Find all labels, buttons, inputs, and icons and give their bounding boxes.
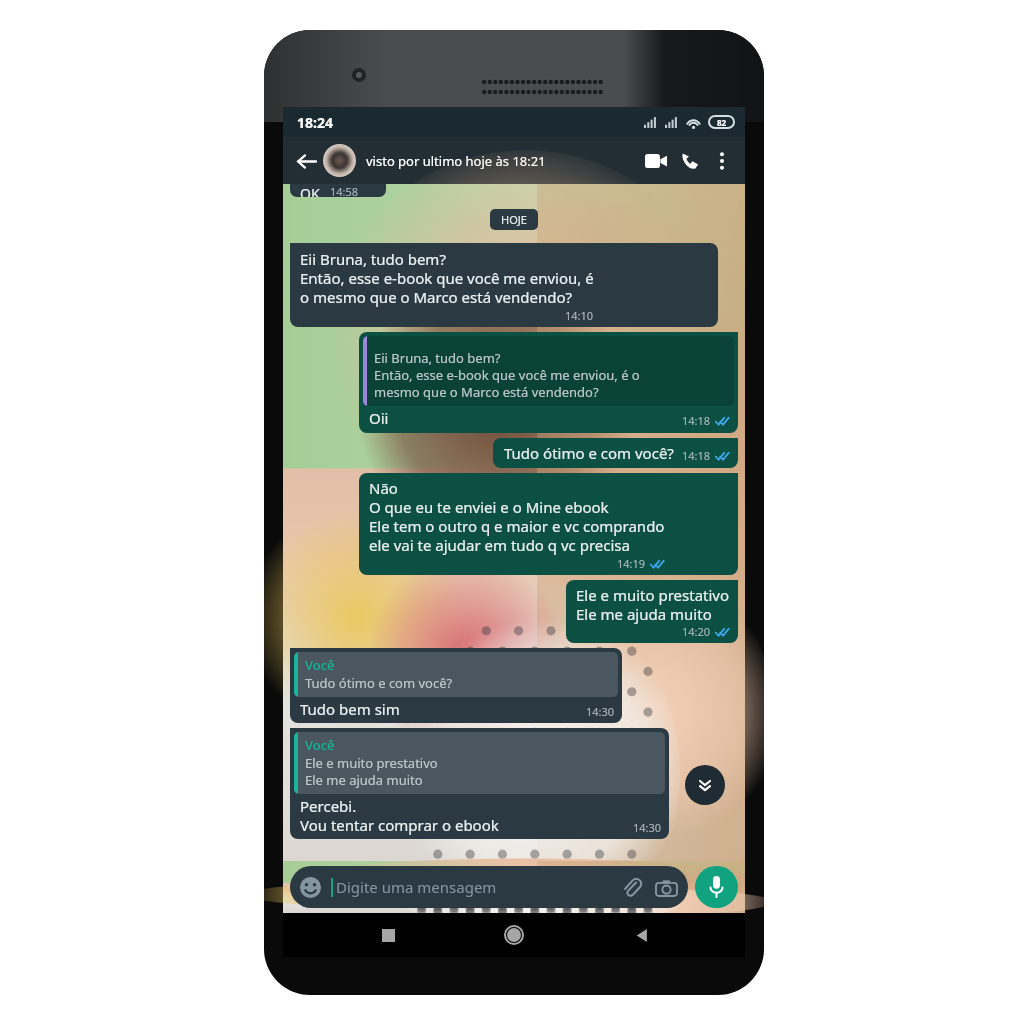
staticText: 14:19	[617, 556, 646, 571]
staticText: 14:18	[682, 413, 711, 428]
staticText: visto por ultimo hoje às 18:21	[366, 152, 639, 170]
button[interactable]: Record voice message	[695, 866, 738, 908]
staticText: HOJE	[501, 212, 527, 227]
button[interactable]: Você	[290, 728, 669, 839]
staticText: 82	[717, 117, 727, 127]
staticText: OK	[300, 184, 320, 197]
staticText: Tudo bem sim	[300, 699, 400, 719]
staticText: 14:58	[330, 184, 359, 197]
staticText: Tudo ótimo e com você?	[305, 674, 453, 692]
staticText: Digite uma mensagem	[336, 877, 620, 897]
staticText: 14:30	[586, 704, 615, 719]
button[interactable]: Scroll to bottom	[685, 765, 725, 805]
staticText: Eii Bruna, tudo bem? Então, esse e-book …	[300, 249, 594, 307]
button[interactable]: Recent apps	[366, 913, 410, 957]
button[interactable]: Eii Bruna, tudo bem? Então, esse e-book …	[359, 332, 738, 433]
staticText: 14:18	[682, 448, 711, 463]
button[interactable]: Eii Bruna, tudo bem? Então, esse e-book …	[290, 243, 718, 327]
button[interactable]: Voice call	[673, 144, 707, 178]
button[interactable]: Não O que eu te enviei e o Mine ebook El…	[359, 473, 738, 575]
button[interactable]: Video call	[639, 144, 673, 178]
staticText: Tudo ótimo e com você?	[504, 443, 674, 463]
staticText: 14:10	[565, 308, 594, 323]
button[interactable]: Back	[619, 913, 663, 957]
staticText: 18:24	[297, 113, 333, 132]
staticText: Eii Bruna, tudo bem? Então, esse e-book …	[374, 349, 640, 401]
button[interactable]: Camera	[655, 876, 678, 899]
staticText: Ele e muito prestativo Ele me ajuda muit…	[576, 585, 730, 624]
button[interactable]: Back	[291, 146, 321, 176]
button[interactable]: More options	[707, 146, 737, 176]
staticText: Oii	[369, 408, 389, 428]
staticText: Ele e muito prestativo Ele me ajuda muit…	[305, 754, 438, 789]
staticText: Percebi. Vou tentar comprar o ebook	[300, 796, 499, 835]
button[interactable]: Attach	[620, 876, 643, 899]
staticText: 14:30	[633, 820, 662, 835]
button[interactable]: Digite uma mensagem	[290, 866, 688, 908]
staticText: 14:20	[682, 624, 711, 639]
staticText: Você	[305, 736, 335, 754]
button[interactable]: Contact photo	[323, 144, 356, 177]
button[interactable]: Home	[492, 913, 536, 957]
button[interactable]: Você	[290, 648, 622, 723]
staticText: Você	[305, 656, 335, 674]
staticText: Não O que eu te enviei e o Mine ebook El…	[369, 478, 665, 555]
button[interactable]: Ele e muito prestativo Ele me ajuda muit…	[566, 580, 738, 643]
button[interactable]: Tudo ótimo e com você?	[493, 438, 738, 468]
button[interactable]: OK	[290, 184, 386, 197]
